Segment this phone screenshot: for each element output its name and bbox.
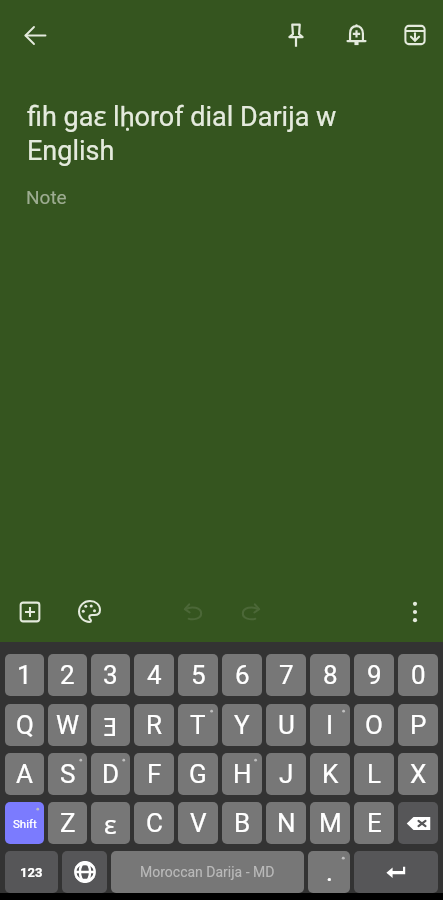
button[interactable]: W — [48, 704, 87, 746]
staticText: Shift — [13, 817, 37, 830]
button[interactable]: 9 — [354, 654, 394, 696]
staticText: 5 — [191, 660, 206, 690]
staticText: E — [367, 808, 382, 838]
button[interactable]: Shift — [5, 802, 44, 844]
staticText: 3 — [103, 660, 118, 690]
button[interactable]: L — [354, 753, 394, 795]
button[interactable]: G — [178, 753, 218, 795]
staticText: 2 — [60, 660, 75, 690]
staticText: 123 — [20, 865, 43, 880]
button[interactable]: T — [178, 704, 218, 746]
button[interactable]: B — [222, 802, 262, 844]
staticText: L — [367, 759, 382, 789]
button[interactable]: U — [266, 704, 306, 746]
staticText: N — [277, 808, 296, 838]
staticText: 7 — [279, 660, 294, 690]
staticText: I — [326, 710, 334, 740]
staticText: Q — [16, 710, 34, 740]
button[interactable]: ɛ — [91, 802, 130, 844]
staticText: J — [279, 759, 294, 789]
staticText: X — [410, 759, 427, 789]
button[interactable]: 0 — [398, 654, 438, 696]
staticText: Z — [60, 808, 76, 838]
staticText: 4 — [147, 660, 162, 690]
button[interactable]: N — [266, 802, 306, 844]
staticText: T — [190, 710, 206, 740]
staticText: 9 — [367, 660, 382, 690]
staticText: Y — [234, 710, 250, 740]
button[interactable]: . — [308, 851, 350, 893]
button[interactable]: Backspace — [398, 802, 438, 844]
staticText: . — [326, 857, 333, 887]
staticText: H — [233, 759, 252, 789]
staticText: ɛ — [104, 806, 117, 841]
staticText: U — [278, 710, 295, 740]
staticText: R — [146, 710, 163, 740]
staticText: fih gaɛ lḥorof dial Darija w English — [27, 97, 357, 167]
staticText: 6 — [235, 660, 250, 690]
button[interactable]: A — [5, 753, 44, 795]
button[interactable]: Ǝ — [91, 704, 130, 746]
button[interactable]: Color palette — [67, 589, 112, 634]
staticText: M — [319, 808, 342, 838]
button[interactable]: O — [354, 704, 394, 746]
button[interactable]: I — [310, 704, 350, 746]
button[interactable]: 2 — [48, 654, 87, 696]
staticText: Ǝ — [103, 708, 118, 743]
button[interactable]: C — [134, 802, 174, 844]
button[interactable]: 123 — [5, 851, 58, 893]
button[interactable]: 1 — [5, 654, 44, 696]
staticText: 8 — [323, 660, 338, 690]
button[interactable]: H — [222, 753, 262, 795]
button[interactable]: 6 — [222, 654, 262, 696]
staticText: S — [60, 759, 76, 789]
button[interactable]: Undo — [170, 589, 215, 634]
button[interactable]: D — [91, 753, 130, 795]
button[interactable]: F — [134, 753, 174, 795]
staticText: G — [189, 759, 207, 789]
button[interactable]: More options — [392, 589, 437, 634]
button[interactable]: Switch keyboard language — [62, 851, 107, 893]
button[interactable]: J — [266, 753, 306, 795]
staticText: Note — [26, 186, 67, 208]
button[interactable]: Q — [5, 704, 44, 746]
button[interactable]: 7 — [266, 654, 306, 696]
staticText: F — [147, 759, 162, 789]
staticText: K — [322, 759, 339, 789]
button[interactable]: S — [48, 753, 87, 795]
button[interactable]: E — [354, 802, 394, 844]
button[interactable]: Back — [11, 11, 59, 59]
button[interactable]: Archive — [391, 11, 439, 59]
button[interactable]: P — [398, 704, 438, 746]
staticText: 0 — [411, 660, 426, 690]
button[interactable]: 5 — [178, 654, 218, 696]
button[interactable]: Enter — [354, 851, 438, 893]
button[interactable]: Space — [111, 851, 304, 893]
button[interactable]: V — [178, 802, 218, 844]
button[interactable]: Y — [222, 704, 262, 746]
button[interactable]: 4 — [134, 654, 174, 696]
button[interactable]: Z — [48, 802, 87, 844]
staticText: C — [146, 808, 163, 838]
button[interactable]: Pin — [272, 11, 320, 59]
button[interactable]: Add reminder — [332, 11, 380, 59]
staticText: A — [16, 759, 33, 789]
button[interactable]: 8 — [310, 654, 350, 696]
button[interactable]: Add attachment — [7, 589, 52, 634]
staticText: 1 — [17, 660, 32, 690]
staticText: B — [234, 808, 251, 838]
staticText: O — [365, 710, 383, 740]
staticText: V — [190, 808, 207, 838]
staticText: D — [102, 759, 120, 789]
staticText: Moroccan Darija - MD — [140, 864, 275, 880]
staticText: W — [56, 710, 80, 740]
button[interactable]: R — [134, 704, 174, 746]
staticText: P — [410, 710, 427, 740]
button[interactable]: 3 — [91, 654, 130, 696]
button[interactable]: K — [310, 753, 350, 795]
button[interactable]: Redo — [228, 589, 273, 634]
button[interactable]: M — [310, 802, 350, 844]
button[interactable]: X — [398, 753, 438, 795]
